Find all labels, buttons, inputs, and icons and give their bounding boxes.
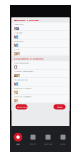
staticText: RESIDENZA E CONTATTI <box>14 18 39 22</box>
button[interactable]: PRATICHE <box>40 128 55 150</box>
staticText: MI <box>14 35 18 39</box>
button[interactable]: SALVA <box>53 104 65 109</box>
staticText: Numero documento <box>14 69 33 73</box>
staticText: Comune <box>14 31 22 34</box>
staticText: SALVA <box>57 105 62 108</box>
button[interactable]: Rilasciato da <box>11 78 69 86</box>
staticText: VIA <box>14 27 19 31</box>
staticText: ANNULLA <box>16 105 26 108</box>
staticText: UTENTI <box>29 143 36 145</box>
button[interactable]: Numero documento <box>11 69 69 78</box>
button[interactable]: CAP <box>11 48 69 56</box>
staticText: CI <box>14 65 17 69</box>
staticText: 201 <box>14 52 20 56</box>
button[interactable]: Tipo documento <box>11 61 69 69</box>
staticText: Data di rilascio <box>14 86 31 90</box>
staticText: Data di scadenza <box>14 95 31 98</box>
staticText: Tipo documento <box>14 61 29 64</box>
button[interactable]: UTENTI <box>25 128 40 150</box>
staticText: Provincia <box>14 39 23 43</box>
staticText: ADM <box>16 143 20 145</box>
button[interactable]: Comune <box>11 31 69 39</box>
staticText: AX1 <box>14 74 20 78</box>
button[interactable]: ALTRO <box>55 128 70 150</box>
staticText: CAP <box>14 48 19 51</box>
button[interactable]: ANNULLA <box>15 104 27 109</box>
staticText: DOCUMENTO D'IDENTITA <box>14 57 44 60</box>
staticText: 12 <box>14 91 18 95</box>
button[interactable]: Data di rilascio <box>11 86 69 95</box>
button[interactable]: Data di scadenza <box>11 95 69 103</box>
staticText: 31 <box>14 99 18 103</box>
staticText: MI <box>14 82 18 86</box>
button[interactable]: Provincia <box>11 39 69 48</box>
staticText: ALTRO <box>60 143 66 145</box>
staticText: Indirizzo <box>14 22 23 26</box>
staticText: MI <box>14 44 18 48</box>
button[interactable]: Indirizzo <box>11 22 69 31</box>
staticText: Rilasciato da <box>14 78 27 81</box>
button[interactable]: ADM <box>10 128 25 150</box>
staticText: PRATICHE <box>44 143 52 145</box>
